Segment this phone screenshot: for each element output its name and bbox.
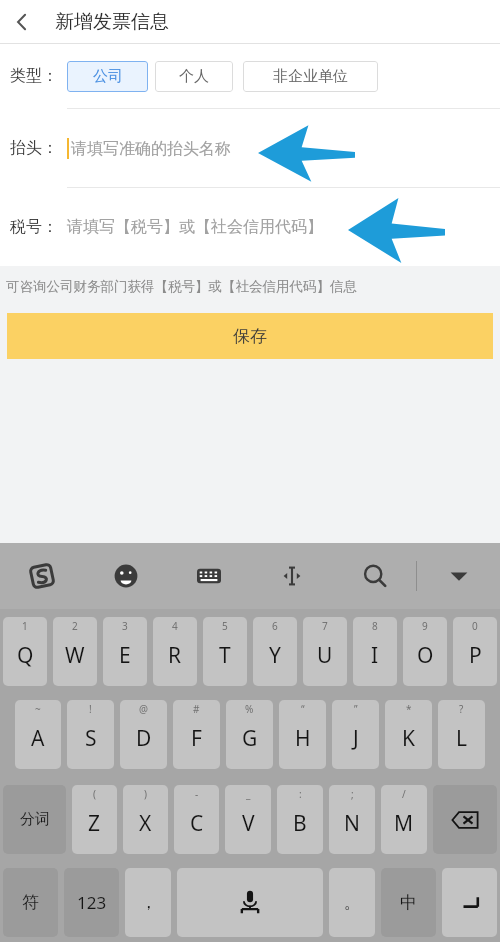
button[interactable]: ( — [72, 785, 117, 854]
button[interactable]: 税号： — [0, 188, 500, 266]
staticText: 3 — [122, 619, 128, 633]
button[interactable]: ! — [67, 700, 114, 769]
staticText: O — [417, 641, 434, 670]
button[interactable]: Move cursor — [250, 543, 333, 609]
staticText: Q — [17, 641, 34, 670]
staticText: ， — [140, 892, 157, 913]
button[interactable]: 公司 — [67, 61, 148, 92]
button[interactable]: 个人 — [155, 61, 233, 92]
staticText: L — [456, 724, 468, 753]
staticText: / — [402, 787, 406, 801]
staticText: H — [295, 724, 311, 753]
staticText: 6 — [272, 619, 278, 633]
button[interactable]: 符 — [3, 868, 58, 937]
button[interactable]: 抬头： — [0, 109, 500, 187]
staticText: ? — [459, 702, 464, 716]
staticText: _ — [246, 787, 251, 801]
staticText: J — [353, 724, 359, 753]
button[interactable]: 分词 — [3, 785, 66, 854]
staticText: 符 — [22, 892, 39, 913]
button[interactable]: 6 — [253, 617, 297, 686]
staticText: 9 — [422, 619, 428, 633]
staticText: “ — [301, 702, 305, 716]
staticText: 抬头： — [10, 138, 58, 158]
button[interactable]: ? — [438, 700, 485, 769]
button[interactable]: 5 — [203, 617, 247, 686]
staticText: 2 — [72, 619, 78, 633]
button[interactable]: - — [174, 785, 219, 854]
staticText: X — [139, 809, 152, 838]
button[interactable]: 0 — [453, 617, 497, 686]
staticText: 税号： — [10, 217, 58, 237]
button[interactable]: Search — [333, 543, 416, 609]
button[interactable]: ” — [332, 700, 379, 769]
staticText: 4 — [172, 619, 178, 633]
staticText: 请填写【税号】或【社会信用代码】 — [67, 217, 323, 237]
button[interactable]: 1 — [3, 617, 47, 686]
button[interactable]: ) — [123, 785, 168, 854]
staticText: C — [190, 809, 204, 838]
button[interactable]: 2 — [53, 617, 97, 686]
button[interactable]: ~ — [15, 700, 61, 769]
button[interactable]: Emoji — [84, 543, 167, 609]
button[interactable]: 4 — [153, 617, 197, 686]
staticText: 可咨询公司财务部门获得【税号】或【社会信用代码】信息 — [6, 278, 357, 295]
staticText: ! — [89, 702, 92, 716]
staticText: 分词 — [20, 810, 50, 829]
staticText: @ — [139, 702, 148, 716]
staticText: % — [245, 702, 254, 716]
button[interactable]: 3 — [103, 617, 147, 686]
button[interactable]: _ — [225, 785, 271, 854]
button[interactable]: 8 — [353, 617, 397, 686]
button[interactable]: Delete — [433, 785, 497, 854]
staticText: - — [195, 787, 199, 801]
button[interactable]: 非企业单位 — [243, 61, 378, 92]
staticText: Y — [269, 641, 281, 670]
staticText: A — [31, 724, 45, 753]
staticText: ~ — [35, 702, 41, 716]
staticText: T — [219, 641, 231, 670]
button[interactable]: Keyboard layout — [167, 543, 250, 609]
staticText: N — [344, 809, 360, 838]
button[interactable]: “ — [279, 700, 326, 769]
button[interactable]: ; — [329, 785, 375, 854]
staticText: Z — [88, 809, 101, 838]
staticText: 新增发票信息 — [55, 10, 169, 34]
button[interactable]: Hide keyboard — [417, 543, 500, 609]
staticText: P — [469, 641, 482, 670]
button[interactable]: 7 — [303, 617, 347, 686]
staticText: 0 — [472, 619, 478, 633]
button[interactable]: * — [385, 700, 432, 769]
staticText: M — [394, 809, 414, 838]
button[interactable]: # — [173, 700, 220, 769]
button[interactable]: 保存 — [7, 313, 493, 359]
staticText: B — [293, 809, 307, 838]
button[interactable]: Sogou input — [0, 543, 84, 609]
button[interactable]: : — [277, 785, 323, 854]
button[interactable]: 中 — [381, 868, 436, 937]
button[interactable]: / — [381, 785, 427, 854]
staticText: I — [371, 641, 379, 670]
staticText: F — [191, 724, 202, 753]
staticText: * — [406, 702, 412, 716]
button[interactable]: % — [226, 700, 273, 769]
button[interactable]: Back — [0, 0, 44, 44]
staticText: D — [136, 724, 152, 753]
button[interactable]: ， — [125, 868, 171, 937]
staticText: 1 — [22, 619, 28, 633]
staticText: 请填写准确的抬头名称 — [71, 139, 231, 159]
staticText: : — [299, 787, 302, 801]
staticText: 保存 — [233, 326, 267, 347]
button[interactable]: Space / Voice input — [177, 868, 323, 937]
staticText: 123 — [77, 891, 107, 914]
button[interactable]: Enter — [442, 868, 497, 937]
button[interactable]: 。 — [329, 868, 375, 937]
button[interactable]: 9 — [403, 617, 447, 686]
button[interactable]: 123 — [64, 868, 119, 937]
staticText: 中 — [400, 892, 417, 913]
staticText: E — [119, 641, 131, 670]
staticText: V — [242, 809, 255, 838]
staticText: 7 — [322, 619, 328, 633]
button[interactable]: @ — [120, 700, 167, 769]
staticText: # — [193, 702, 200, 716]
